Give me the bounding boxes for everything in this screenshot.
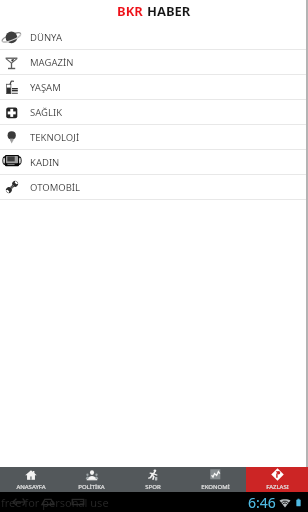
button[interactable]: Recent apps <box>70 494 86 510</box>
staticText: free for personal use <box>1 495 109 510</box>
staticText: SAĞLIK <box>30 106 63 119</box>
staticText: 6:46 <box>248 493 276 512</box>
button[interactable]: DÜNYA <box>0 25 308 50</box>
button[interactable]: ANASAYFA <box>0 467 61 492</box>
staticText: EKONOMİ <box>201 483 230 491</box>
button[interactable]: POLİTİKA <box>61 467 122 492</box>
staticText: HABER <box>147 2 191 20</box>
staticText: MAGAZİN <box>30 56 74 69</box>
button[interactable]: Home <box>40 494 56 510</box>
button[interactable]: SPOR <box>122 467 184 492</box>
staticText: POLİTİKA <box>78 483 105 491</box>
button[interactable]: TEKNOLOJİ <box>0 125 308 150</box>
button[interactable]: YAŞAM <box>0 75 308 100</box>
staticText: FAZLASI <box>266 483 289 491</box>
staticText: BKR <box>117 2 147 20</box>
staticText: TEKNOLOJİ <box>30 131 80 144</box>
staticText: YAŞAM <box>30 81 61 94</box>
button[interactable]: FAZLASI <box>246 467 308 492</box>
button[interactable]: EKONOMİ <box>184 467 246 492</box>
staticText: KADIN <box>30 156 60 169</box>
staticText: ANASAYFA <box>16 483 46 491</box>
button[interactable]: OTOMOBİL <box>0 175 308 200</box>
button[interactable]: Back <box>10 494 26 510</box>
staticText: OTOMOBİL <box>30 181 81 194</box>
staticText: DÜNYA <box>30 31 62 44</box>
button[interactable]: SAĞLIK <box>0 100 308 125</box>
button[interactable]: MAGAZİN <box>0 50 308 75</box>
button[interactable]: KADIN <box>0 150 308 175</box>
staticText: SPOR <box>145 483 161 491</box>
